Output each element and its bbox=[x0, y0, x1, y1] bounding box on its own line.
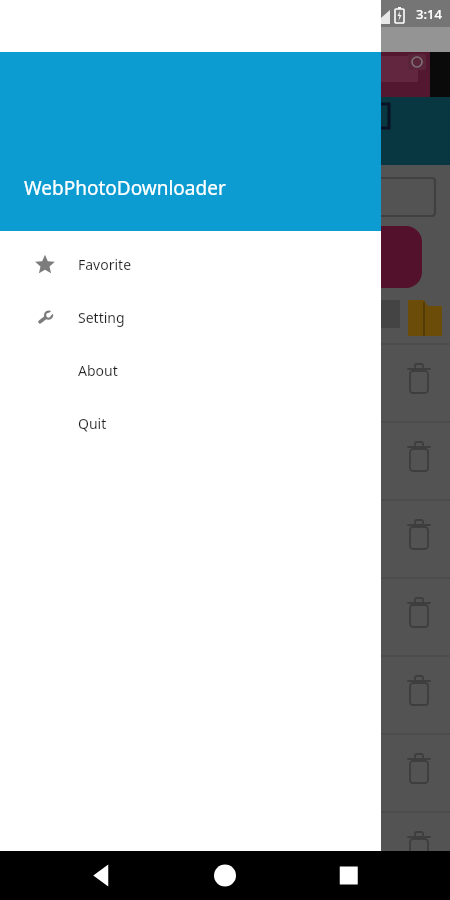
button[interactable]: About bbox=[0, 344, 381, 397]
button[interactable]: Back bbox=[0, 851, 150, 900]
staticText: 3:14 bbox=[416, 5, 442, 23]
staticText: About bbox=[78, 361, 118, 380]
button[interactable]: Setting bbox=[0, 291, 381, 344]
staticText: WebPhotoDownloader bbox=[24, 175, 226, 201]
staticText: Setting bbox=[78, 308, 125, 327]
staticText: Quit bbox=[78, 414, 107, 433]
button[interactable]: Favorite bbox=[0, 238, 381, 291]
button[interactable]: WebPhotoDownloader bbox=[0, 52, 381, 231]
button[interactable]: Home bbox=[150, 851, 300, 900]
staticText: Favorite bbox=[78, 255, 132, 274]
button[interactable]: Recent apps bbox=[300, 851, 450, 900]
button[interactable]: Quit bbox=[0, 397, 381, 450]
